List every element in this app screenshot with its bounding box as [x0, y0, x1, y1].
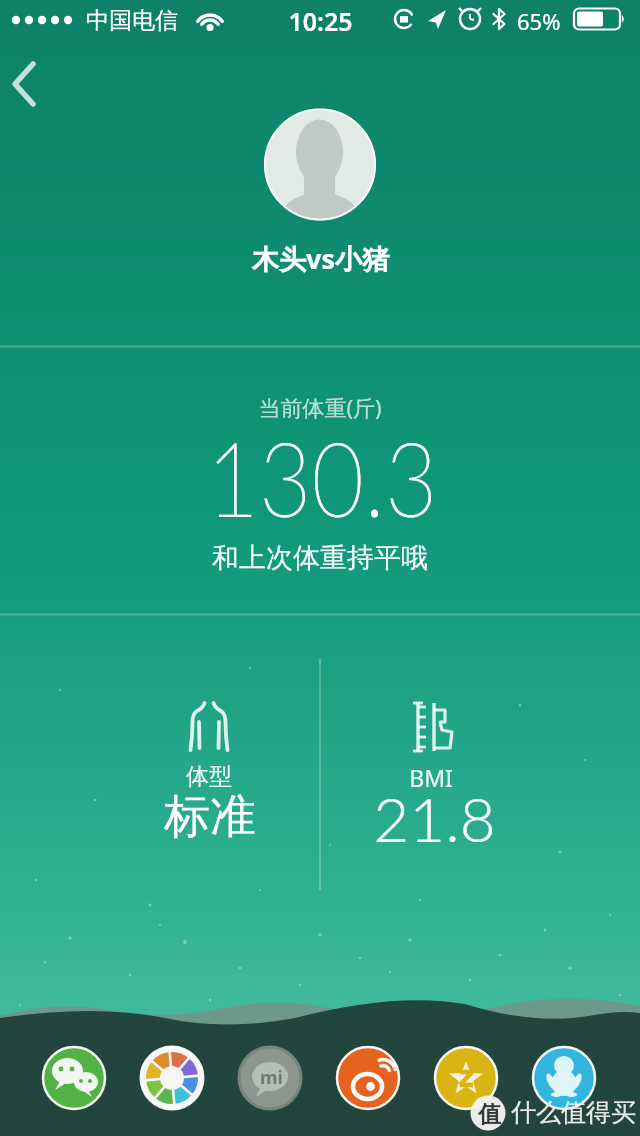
- staticText: 标准: [164, 788, 256, 846]
- button[interactable]: [533, 1047, 595, 1109]
- button[interactable]: [266, 110, 374, 218]
- button[interactable]: [6, 56, 60, 110]
- button[interactable]: [435, 1047, 497, 1109]
- staticText: 和上次体重持平哦: [212, 541, 428, 575]
- staticText: 木头vs小猪: [252, 240, 389, 277]
- button[interactable]: [141, 1047, 203, 1109]
- staticText: 值: [478, 1100, 501, 1129]
- button[interactable]: [337, 1047, 399, 1109]
- staticText: mi: [260, 1065, 283, 1090]
- button[interactable]: [239, 1047, 301, 1109]
- staticText: 10:25: [288, 4, 353, 38]
- staticText: 中国电信: [86, 6, 178, 35]
- staticText: 什么值得买: [511, 1097, 636, 1128]
- staticText: 130.3: [206, 414, 438, 539]
- staticText: 65%: [517, 6, 561, 36]
- staticText: 21.8: [373, 781, 496, 855]
- staticText: 体型: [186, 762, 232, 791]
- staticText: 当前体重(斤): [258, 392, 382, 422]
- staticText: BMI: [409, 762, 453, 793]
- button[interactable]: [43, 1047, 105, 1109]
